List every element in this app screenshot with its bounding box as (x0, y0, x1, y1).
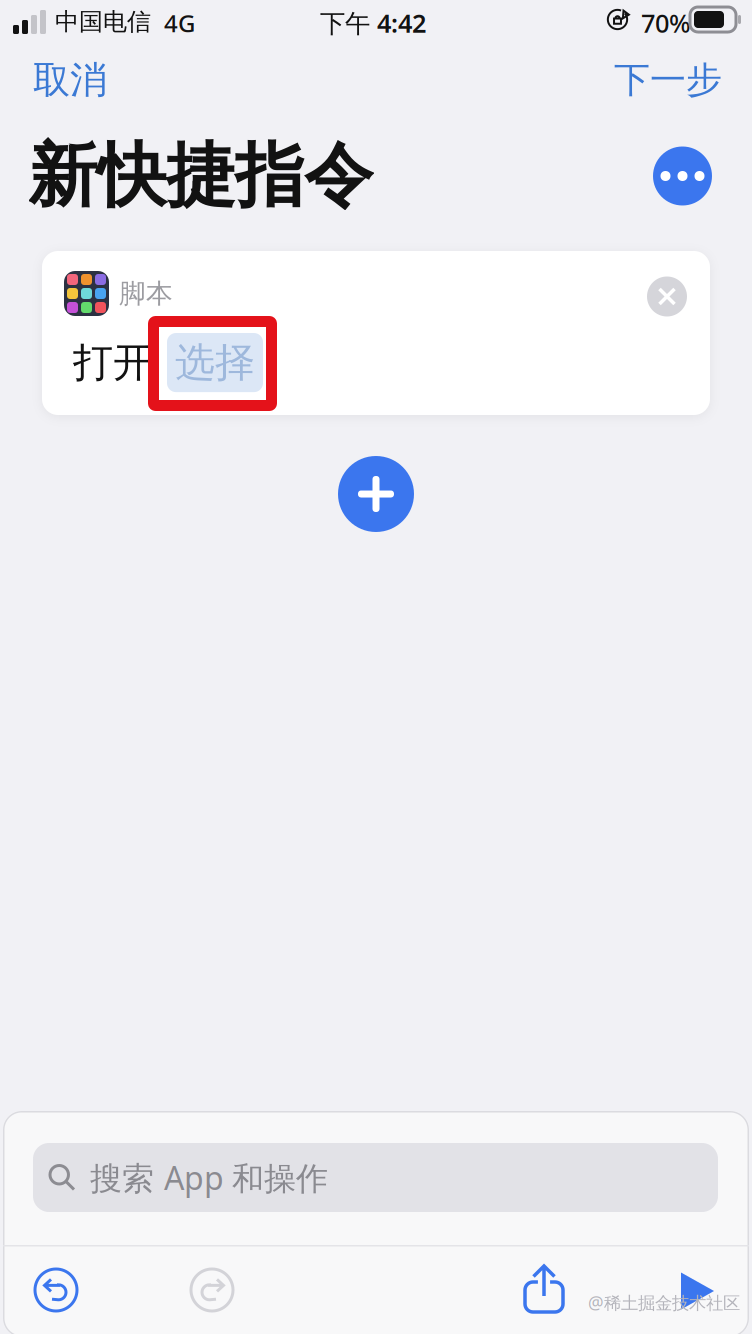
button[interactable]: 搜索 App 和操作 (33, 1143, 718, 1212)
staticText: 下午 4:42 (320, 6, 426, 40)
staticText: 新快捷指令 (28, 133, 373, 219)
staticText: 搜索 App 和操作 (90, 1156, 328, 1199)
staticText: @稀土掘金技术社区 (588, 1291, 740, 1314)
button[interactable]: Remove action (647, 276, 687, 316)
button[interactable]: Share (514, 1251, 574, 1311)
button[interactable]: Run (666, 1261, 726, 1321)
button[interactable]: More options (653, 146, 712, 205)
staticText: 中国电信 (55, 7, 151, 36)
staticText: 选择 (175, 338, 255, 387)
button[interactable]: Add action (338, 456, 414, 532)
staticText: 打开 (73, 338, 153, 387)
button[interactable]: 取消 (23, 45, 117, 115)
button[interactable]: Redo (180, 1258, 244, 1322)
staticText: 4G (164, 7, 195, 39)
staticText: 取消 (33, 57, 107, 103)
staticText: 下一步 (614, 58, 722, 102)
staticText: 脚本 (119, 277, 173, 310)
staticText: 70% (641, 6, 691, 40)
button[interactable]: Undo (24, 1258, 88, 1322)
button[interactable]: 下一步 (604, 46, 732, 114)
